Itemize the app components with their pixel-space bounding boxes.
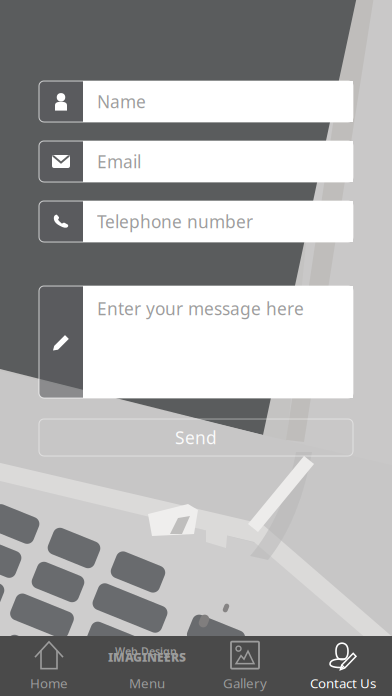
button[interactable]: Send [39, 419, 353, 456]
staticText: Home [30, 674, 68, 692]
button[interactable]: Enter your message here [39, 286, 353, 398]
button[interactable]: Home [0, 636, 98, 696]
button[interactable]: Gallery [196, 636, 294, 696]
staticText: Name [97, 90, 146, 113]
staticText: Email [97, 150, 141, 173]
staticText: Web Design [115, 644, 177, 658]
staticText: Gallery [223, 674, 267, 692]
staticText: Menu [129, 674, 165, 692]
staticText: Telephone number [97, 210, 253, 233]
button[interactable]: Email [39, 141, 353, 182]
staticText: IMAGINEERS [108, 649, 186, 665]
button[interactable]: Web Design [98, 636, 196, 696]
staticText: Send [175, 426, 217, 449]
button[interactable]: Telephone number [39, 201, 353, 242]
staticText: Enter your message here [97, 297, 304, 320]
staticText: Contact Us [310, 674, 376, 692]
button[interactable]: Contact Us [294, 636, 392, 696]
button[interactable]: Name [39, 81, 353, 122]
